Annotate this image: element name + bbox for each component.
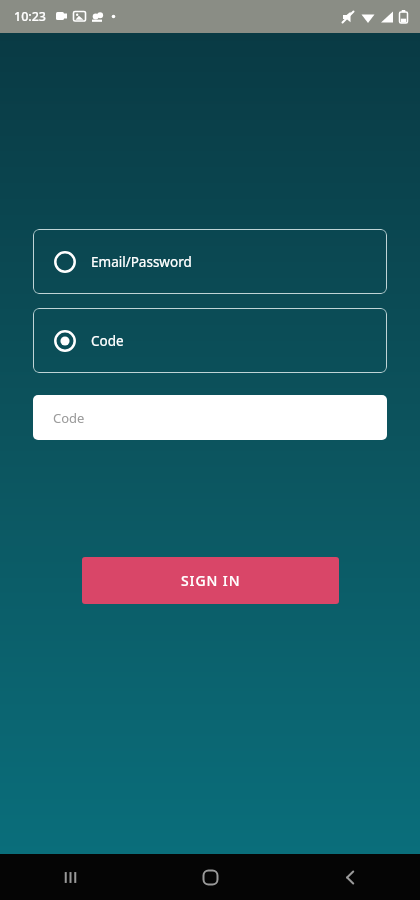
- button[interactable]: Code: [33, 308, 387, 373]
- button[interactable]: Recent apps: [46, 854, 94, 900]
- staticText: Email/Password: [91, 253, 192, 271]
- button[interactable]: Code: [33, 395, 387, 440]
- staticText: Code: [91, 332, 124, 350]
- button[interactable]: SIGN IN: [82, 557, 339, 604]
- staticText: 10:23: [14, 8, 47, 25]
- staticText: Code: [53, 409, 85, 427]
- button[interactable]: Email/Password: [33, 229, 387, 294]
- staticText: SIGN IN: [181, 571, 241, 590]
- button[interactable]: Back: [326, 854, 374, 900]
- button[interactable]: Home: [186, 854, 234, 900]
